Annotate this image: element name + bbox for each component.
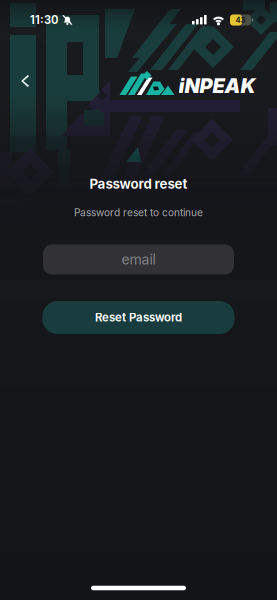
- button[interactable]: email: [43, 244, 234, 274]
- staticText: email: [121, 251, 155, 268]
- staticText: 43: [235, 15, 245, 24]
- button[interactable]: Back: [5, 61, 45, 101]
- staticText: Reset Password: [95, 311, 182, 324]
- button[interactable]: Reset Password: [42, 301, 234, 334]
- staticText: iNPEAK: [178, 74, 255, 98]
- staticText: 11:30: [30, 13, 58, 27]
- staticText: Password reset: [89, 176, 187, 192]
- staticText: Password reset to continue: [74, 206, 203, 219]
